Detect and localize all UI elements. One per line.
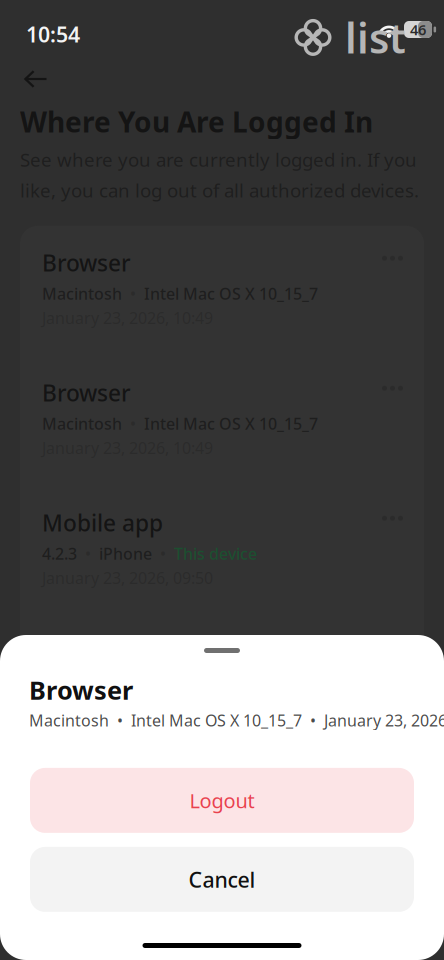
staticText: Macintosh: [42, 283, 122, 304]
staticText: Intel Mac OS X 10_15_7: [144, 413, 318, 434]
staticText: iPhone: [99, 543, 152, 564]
staticText: Macintosh • Intel Mac OS X 10_15_7 • Jan…: [29, 710, 444, 731]
button[interactable]: Cancel: [30, 847, 414, 912]
staticText: 46: [410, 20, 426, 39]
staticText: Logout: [189, 787, 254, 814]
staticText: Cancel: [188, 865, 255, 893]
staticText: Macintosh: [42, 413, 122, 434]
button[interactable]: Logout: [30, 768, 414, 833]
staticText: This device: [174, 543, 257, 564]
staticText: list: [345, 10, 406, 65]
button[interactable]: Back: [0, 58, 64, 96]
staticText: 4.2.3: [42, 543, 77, 564]
staticText: Where You Are Logged In: [20, 103, 373, 140]
staticText: Browser: [29, 673, 133, 707]
staticText: Mobile app: [42, 508, 163, 538]
staticText: Browser: [42, 378, 131, 408]
staticText: Intel Mac OS X 10_15_7: [144, 283, 318, 304]
staticText: Browser: [42, 248, 131, 278]
staticText: See where you are currently logged in. I…: [20, 147, 419, 203]
staticText: 10:54: [26, 20, 80, 48]
